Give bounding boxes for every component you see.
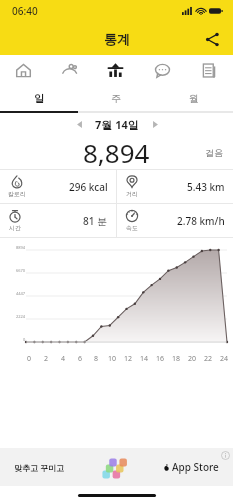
button[interactable]: News xyxy=(186,55,233,86)
staticText: 296 kcal xyxy=(69,180,108,194)
button[interactable]: 주 xyxy=(77,86,155,111)
staticText: 0 xyxy=(27,354,32,364)
staticText: 일 xyxy=(34,92,44,105)
staticText: 81 분 xyxy=(83,214,108,228)
staticText: 22 xyxy=(204,354,213,364)
staticText: 12 xyxy=(124,354,133,364)
button[interactable]: Ad info xyxy=(221,451,230,460)
staticText: 20 xyxy=(188,354,197,364)
staticText: 주 xyxy=(111,92,121,105)
staticText: 월 xyxy=(189,92,199,105)
button[interactable]: Chat xyxy=(139,55,186,86)
staticText: 06:40 xyxy=(12,4,38,18)
button[interactable]: Statistics xyxy=(92,55,139,86)
button[interactable]: 시간 xyxy=(0,204,116,237)
button[interactable]: 칼로리 xyxy=(0,170,116,203)
button[interactable]: Share xyxy=(197,24,227,54)
staticText: 14 xyxy=(140,354,149,364)
staticText: 2224 xyxy=(16,314,26,319)
staticText: 24 xyxy=(220,354,229,364)
staticText: 16 xyxy=(156,354,165,364)
staticText: 5.43 km xyxy=(187,180,225,194)
staticText: 0 xyxy=(23,337,26,342)
staticText: 7월 14일 xyxy=(95,117,139,132)
staticText: 10 xyxy=(108,354,117,364)
staticText: 걸음 xyxy=(205,147,223,158)
staticText: 거리 xyxy=(126,190,138,198)
staticText: 4447 xyxy=(16,291,26,296)
button[interactable]: 일 xyxy=(0,86,77,111)
button[interactable]: 월 xyxy=(155,86,233,111)
button[interactable]: 거리 xyxy=(117,170,233,203)
staticText: 8894 xyxy=(16,245,26,250)
button[interactable]: 속도 xyxy=(117,204,233,237)
button[interactable]: Previous day xyxy=(69,114,89,134)
button[interactable]: Friends xyxy=(46,55,92,86)
staticText: 2 xyxy=(44,354,49,364)
staticText: 시간 xyxy=(9,224,21,232)
staticText: 6670 xyxy=(16,268,26,273)
staticText: 4 xyxy=(61,354,66,364)
staticText: 18 xyxy=(172,354,181,364)
button[interactable]: Next day xyxy=(145,114,165,134)
button[interactable]: 맞추고 꾸미고 xyxy=(0,448,233,486)
staticText: 2.78 km/h xyxy=(177,214,225,228)
staticText: 통계 xyxy=(104,31,130,47)
staticText: 8 xyxy=(94,354,99,364)
staticText: App Store xyxy=(172,460,219,474)
staticText: 8,894 xyxy=(83,135,150,169)
staticText: 칼로리 xyxy=(8,190,26,198)
staticText: 6 xyxy=(78,354,83,364)
staticText: 속도 xyxy=(126,224,138,232)
staticText: 맞추고 꾸미고 xyxy=(14,462,65,473)
button[interactable]: Home xyxy=(0,55,46,86)
